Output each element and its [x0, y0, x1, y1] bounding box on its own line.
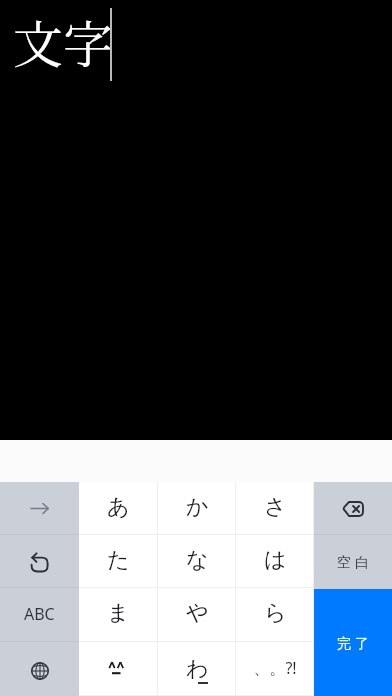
button[interactable]: Next candidate — [0, 482, 79, 535]
button[interactable]: さ — [236, 482, 314, 535]
button[interactable]: は — [236, 535, 314, 588]
staticText: あ — [107, 493, 130, 521]
staticText: た — [107, 546, 130, 574]
staticText: な — [186, 546, 209, 574]
staticText: ABC — [24, 603, 55, 625]
button[interactable]: た — [79, 535, 158, 588]
button[interactable]: Undo — [0, 535, 79, 588]
button[interactable]: な — [158, 535, 236, 588]
staticText: わ — [186, 655, 209, 683]
button[interactable]: ら — [236, 588, 314, 642]
staticText: 文字 — [13, 5, 113, 77]
staticText: 空白 — [335, 554, 371, 572]
staticText: か — [186, 493, 209, 521]
staticText: 完了 — [335, 635, 371, 653]
staticText: や — [186, 599, 209, 627]
staticText: さ — [264, 493, 287, 521]
staticText: 、。?! — [253, 657, 297, 679]
button[interactable]: Space — [314, 535, 392, 589]
button[interactable]: Punctuation — [236, 642, 314, 696]
staticText: は — [264, 546, 287, 574]
button[interactable]: ABC keyboard — [0, 588, 79, 642]
button[interactable]: か — [158, 482, 236, 535]
staticText: ら — [264, 599, 287, 627]
button[interactable]: Change language — [0, 642, 79, 696]
staticText: ま — [107, 599, 130, 627]
button[interactable]: Emoticon — [79, 642, 158, 696]
button[interactable]: わ — [158, 642, 236, 696]
button[interactable]: ま — [79, 588, 158, 642]
button[interactable]: 完了 — [314, 589, 392, 696]
button[interactable]: や — [158, 588, 236, 642]
button[interactable]: あ — [79, 482, 158, 535]
button[interactable]: Backspace — [314, 482, 392, 535]
